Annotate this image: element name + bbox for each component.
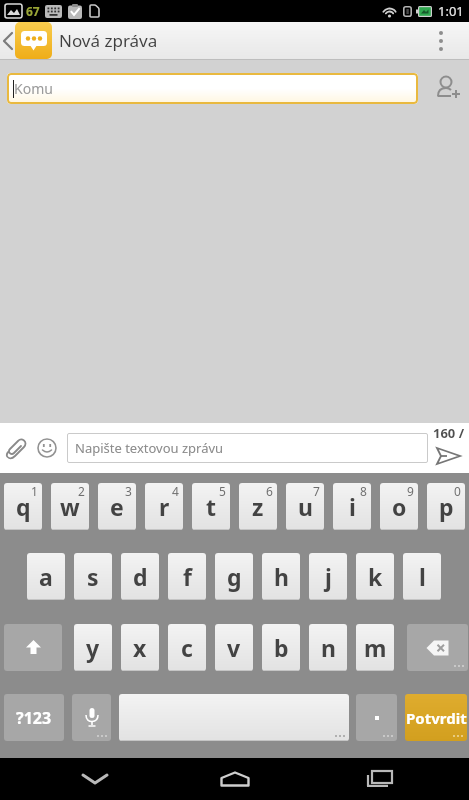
staticText: w xyxy=(60,491,80,522)
staticText: y xyxy=(86,632,100,663)
button[interactable]: b xyxy=(262,624,300,671)
staticText: z xyxy=(252,491,264,522)
button[interactable]: ?123 xyxy=(4,694,64,741)
staticText: h xyxy=(274,561,289,592)
staticText: a xyxy=(39,561,53,592)
button[interactable] xyxy=(356,694,397,741)
staticText: e xyxy=(110,491,124,522)
staticText: p xyxy=(439,491,454,522)
staticText: 5 xyxy=(219,483,226,499)
staticText: m xyxy=(364,632,387,663)
staticText: f xyxy=(183,561,192,592)
button[interactable] xyxy=(71,758,119,800)
button[interactable] xyxy=(407,624,468,671)
staticText: d xyxy=(133,561,148,592)
staticText: 1 xyxy=(31,483,38,499)
button[interactable]: f xyxy=(168,553,206,600)
button[interactable] xyxy=(430,70,466,106)
button[interactable]: d xyxy=(121,553,159,600)
staticText: 7 xyxy=(313,483,320,499)
button[interactable] xyxy=(434,442,464,470)
staticText: s xyxy=(87,561,99,592)
staticText: 0 xyxy=(454,483,461,499)
button[interactable] xyxy=(0,423,32,473)
staticText: Potvrdit xyxy=(406,708,467,728)
button[interactable] xyxy=(32,423,62,473)
staticText: g xyxy=(227,561,242,592)
staticText: 4 xyxy=(172,483,179,499)
staticText: 8 xyxy=(360,483,367,499)
button[interactable] xyxy=(4,624,62,671)
staticText: 2 xyxy=(78,483,85,499)
button[interactable]: i xyxy=(333,483,371,530)
button[interactable] xyxy=(211,758,259,800)
staticText: t xyxy=(206,491,216,522)
staticText: 160 / xyxy=(433,424,465,442)
button[interactable]: g xyxy=(215,553,253,600)
button[interactable] xyxy=(72,694,111,741)
button[interactable]: t xyxy=(192,483,230,530)
staticText: l xyxy=(419,561,426,592)
staticText: k xyxy=(368,561,383,592)
button[interactable]: x xyxy=(121,624,159,671)
button[interactable] xyxy=(0,22,15,59)
button[interactable]: k xyxy=(356,553,394,600)
staticText: 3 xyxy=(125,483,132,499)
button[interactable]: w xyxy=(51,483,89,530)
staticText: o xyxy=(392,491,407,522)
button[interactable]: v xyxy=(215,624,253,671)
staticText: j xyxy=(325,561,332,592)
button[interactable]: e xyxy=(98,483,136,530)
button[interactable]: Komu xyxy=(7,73,418,104)
button[interactable]: l xyxy=(403,553,441,600)
staticText: Komu xyxy=(14,79,53,98)
staticText: b xyxy=(274,632,289,663)
staticText: v xyxy=(227,632,241,663)
button[interactable]: s xyxy=(74,553,112,600)
staticText: c xyxy=(181,632,193,663)
button[interactable]: n xyxy=(309,624,347,671)
button[interactable]: j xyxy=(309,553,347,600)
staticText: 6 xyxy=(266,483,273,499)
button[interactable] xyxy=(356,758,404,800)
staticText: 67 xyxy=(26,3,40,19)
staticText: u xyxy=(298,491,313,522)
button[interactable]: q xyxy=(4,483,42,530)
button[interactable]: o xyxy=(380,483,418,530)
staticText: r xyxy=(159,491,170,522)
staticText: 9 xyxy=(407,483,414,499)
staticText: x xyxy=(133,632,147,663)
button[interactable]: a xyxy=(27,553,65,600)
button[interactable] xyxy=(119,694,349,741)
button[interactable] xyxy=(424,22,458,59)
button[interactable]: h xyxy=(262,553,300,600)
staticText: ?123 xyxy=(16,707,52,729)
button[interactable]: u xyxy=(286,483,324,530)
staticText: 1:01 xyxy=(438,2,464,20)
button[interactable]: Napište textovou zprávu xyxy=(67,433,428,463)
staticText: n xyxy=(321,632,336,663)
staticText: Nová zpráva xyxy=(59,29,158,52)
button[interactable]: y xyxy=(74,624,112,671)
button[interactable]: m xyxy=(356,624,394,671)
staticText: q xyxy=(16,491,31,522)
staticText: i xyxy=(349,491,356,522)
button[interactable]: c xyxy=(168,624,206,671)
staticText: Napište textovou zprávu xyxy=(75,439,224,457)
button[interactable]: p xyxy=(427,483,465,530)
button[interactable]: r xyxy=(145,483,183,530)
button[interactable]: Potvrdit xyxy=(405,694,467,741)
button[interactable]: z xyxy=(239,483,277,530)
